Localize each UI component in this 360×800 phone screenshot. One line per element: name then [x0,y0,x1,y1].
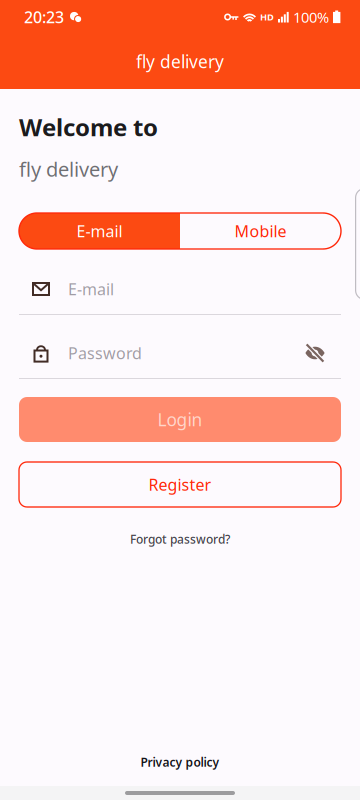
staticText: 20:23 [24,6,64,28]
staticText: Login [157,408,202,431]
staticText: Password [68,342,142,364]
button[interactable]: Login [19,397,341,442]
staticText: 100% [293,7,329,27]
staticText: Welcome to [19,111,158,143]
staticText: E-mail [68,278,114,300]
button[interactable]: Privacy policy [140,752,219,772]
button[interactable]: E-mail [19,213,180,249]
staticText: fly delivery [136,50,224,73]
button[interactable]: Forgot password? [130,529,230,549]
staticText: Mobile [234,220,286,242]
staticText: Privacy policy [140,754,219,770]
staticText: fly delivery [19,156,118,182]
staticText: E-mail [76,220,122,242]
staticText: Forgot password? [130,531,230,547]
staticText: Register [148,474,211,495]
button[interactable]: Show password [305,344,325,362]
button[interactable]: Mobile [180,213,341,249]
button[interactable]: Register [19,462,341,507]
staticText: HD [260,11,274,23]
